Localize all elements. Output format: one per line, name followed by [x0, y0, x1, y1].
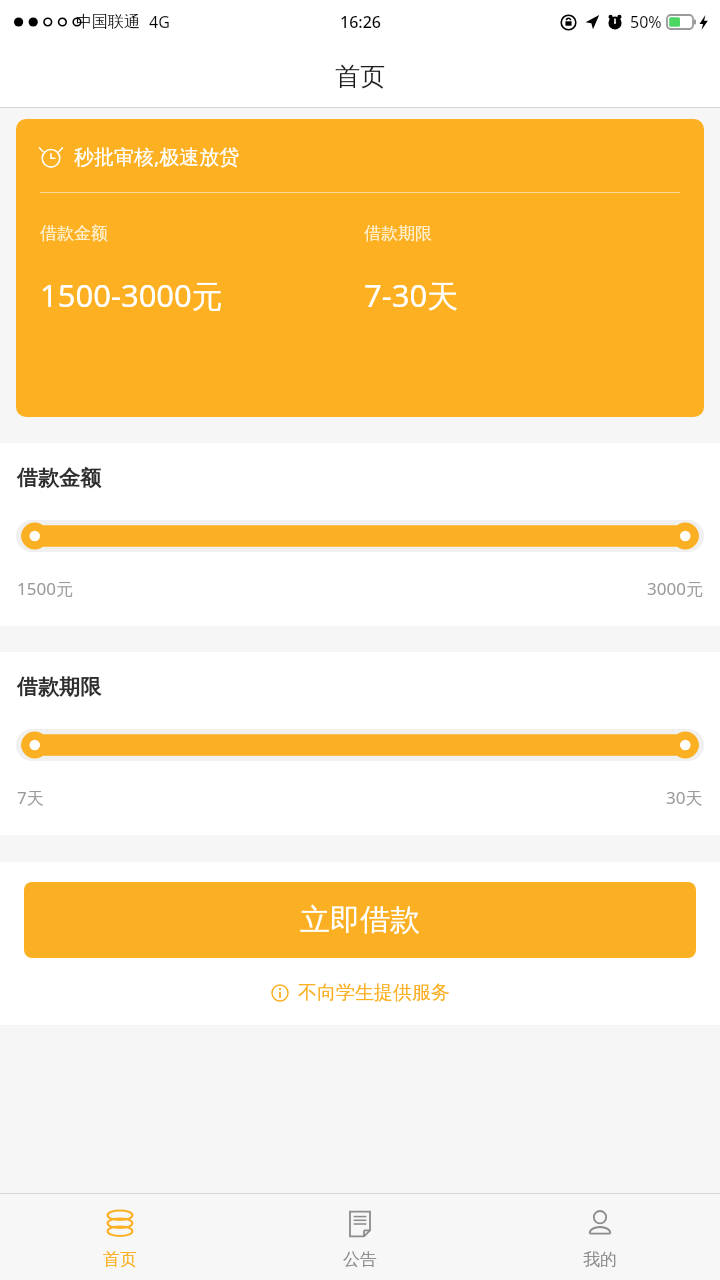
staticText: 3000元 — [647, 577, 703, 600]
staticText: 借款期限 — [364, 223, 432, 244]
button[interactable]: 不向学生提供服务 — [0, 981, 720, 1005]
staticText: 借款期限 — [17, 674, 101, 700]
staticText: 立即借款 — [300, 901, 420, 939]
staticText: 50% — [630, 11, 662, 33]
staticText: 7天 — [17, 786, 44, 809]
button[interactable]: 我的 — [480, 1194, 720, 1280]
button[interactable]: 秒批审核,极速放贷 — [16, 119, 704, 417]
staticText: 4G — [149, 11, 170, 33]
staticText: 1500元 — [17, 577, 73, 600]
staticText: 首页 — [335, 61, 385, 92]
button[interactable]: 公告 — [240, 1194, 480, 1280]
staticText: 首页 — [103, 1249, 137, 1270]
staticText: 1500-3000元 — [40, 274, 223, 316]
staticText: 公告 — [343, 1249, 377, 1270]
button[interactable]: 立即借款 — [24, 882, 696, 958]
staticText: 借款金额 — [17, 465, 101, 491]
staticText: 7-30天 — [364, 274, 459, 316]
button[interactable]: Range slider — [16, 520, 704, 552]
staticText: 30天 — [666, 786, 703, 809]
staticText: 16:26 — [340, 11, 381, 33]
staticText: 中国联通 — [76, 12, 140, 32]
button[interactable]: Range slider — [16, 729, 704, 761]
staticText: 秒批审核,极速放贷 — [74, 143, 240, 170]
staticText: 借款金额 — [40, 223, 108, 244]
staticText: 我的 — [583, 1249, 617, 1270]
staticText: 不向学生提供服务 — [298, 981, 450, 1005]
button[interactable]: 首页 — [0, 1194, 240, 1280]
